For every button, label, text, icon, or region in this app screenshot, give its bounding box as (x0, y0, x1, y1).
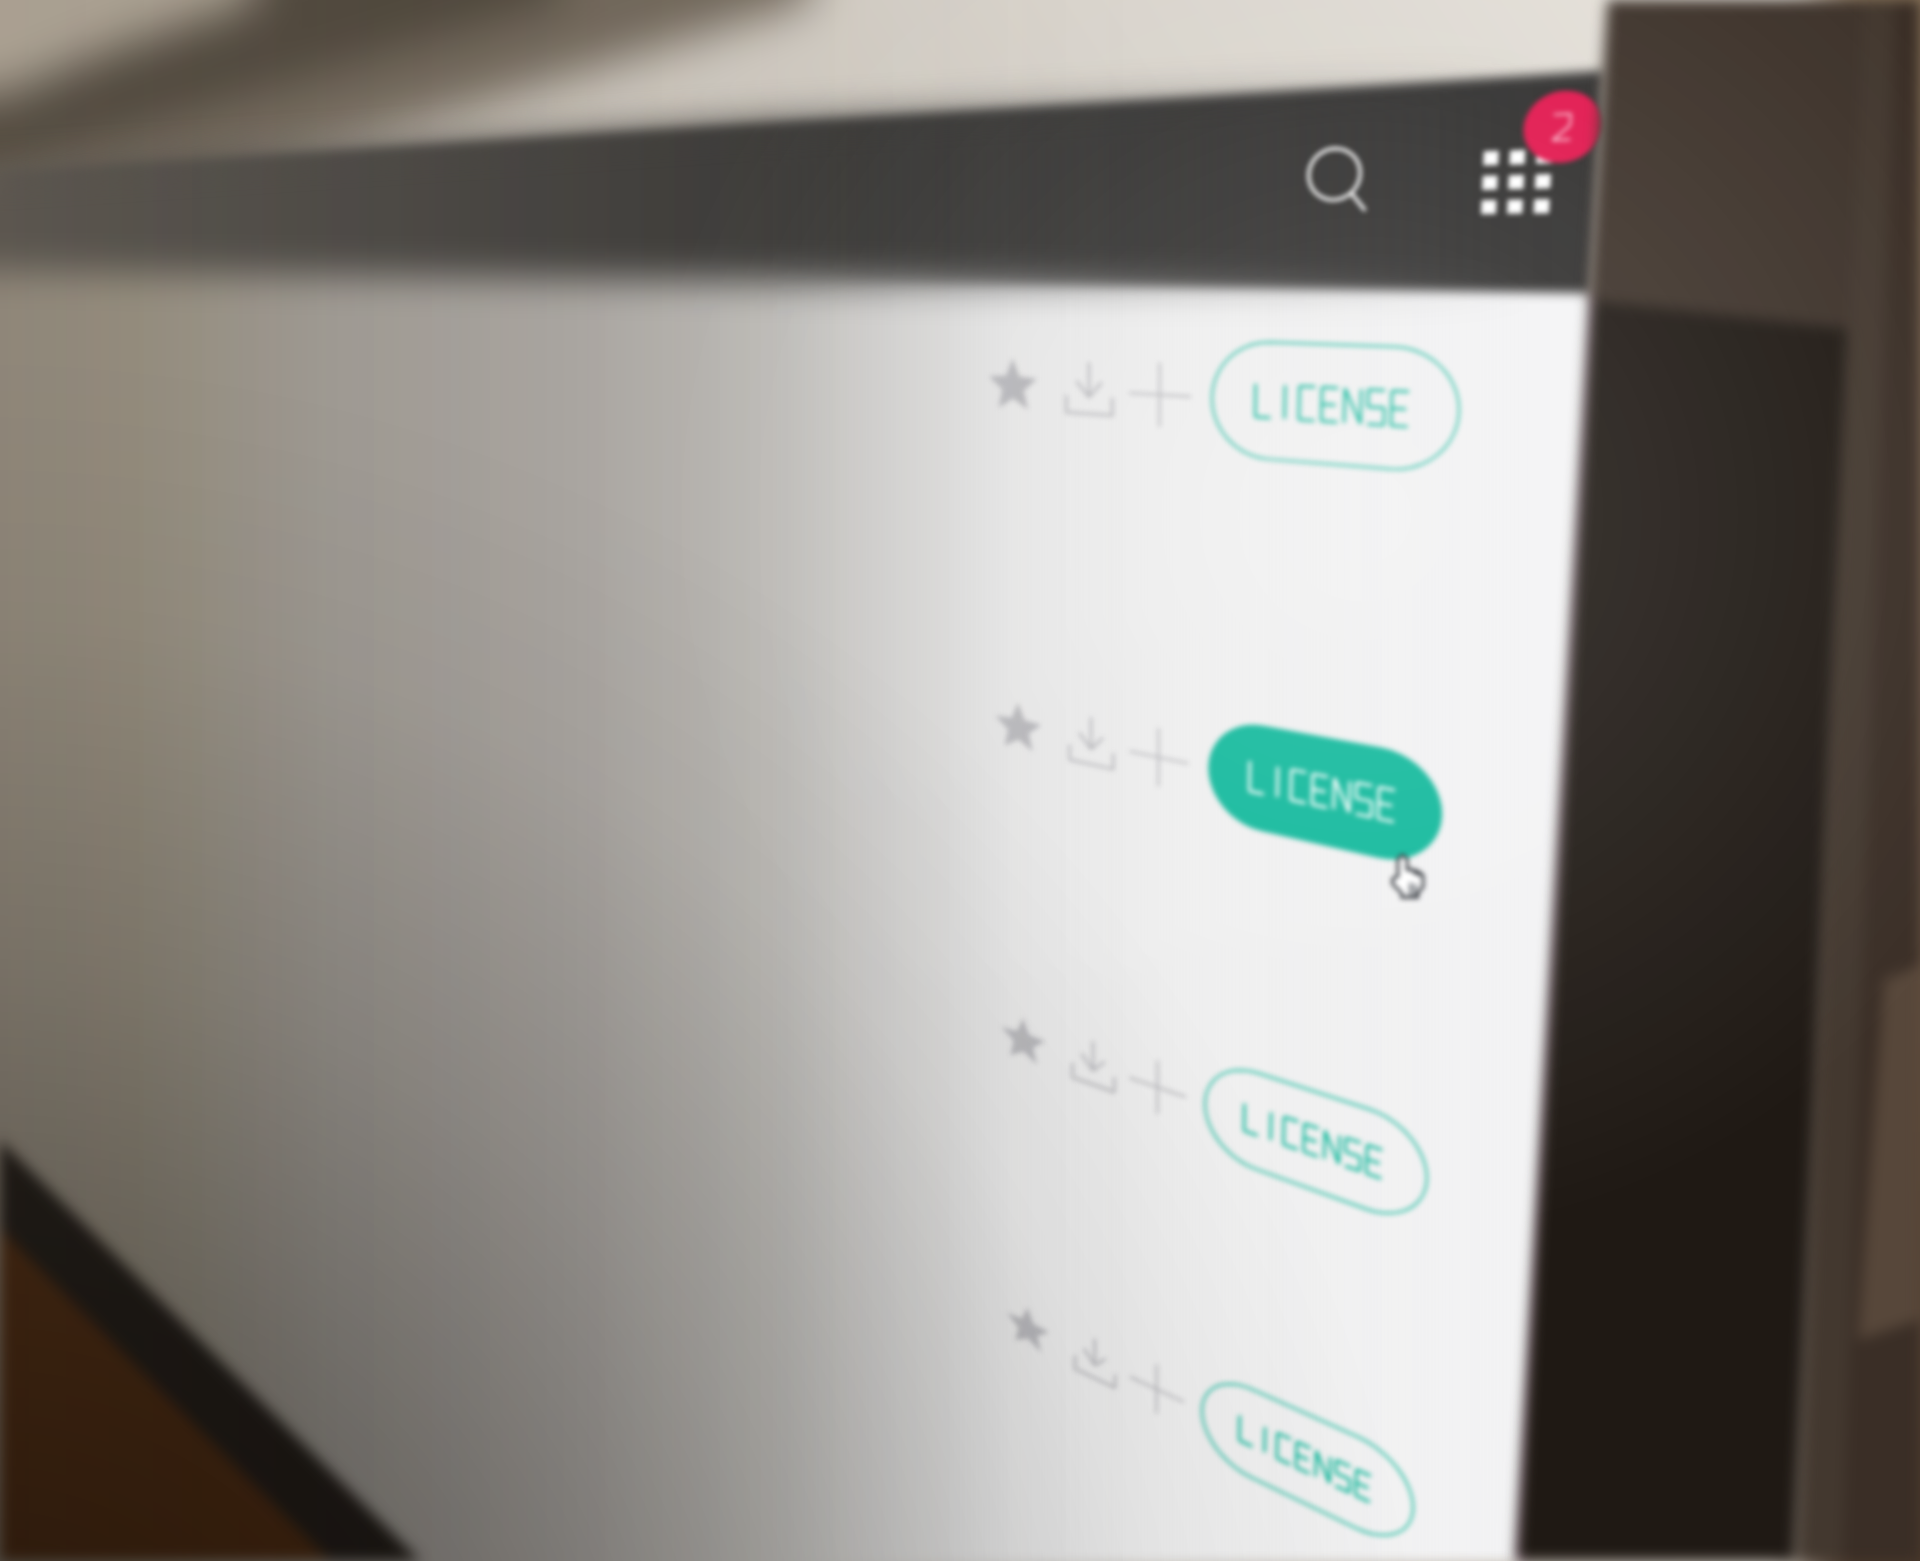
button[interactable]: Favourite (998, 1287, 1066, 1365)
button[interactable]: LICENSE (1212, 340, 1456, 474)
button[interactable]: Add (1123, 714, 1198, 798)
button[interactable]: Favourite (986, 688, 1054, 766)
button[interactable]: LICENSE (1202, 1366, 1411, 1554)
button[interactable]: LICENSE (1205, 1056, 1424, 1230)
button[interactable]: Search (1300, 145, 1375, 220)
button[interactable]: Download (1057, 701, 1129, 783)
button[interactable]: Add (1124, 1344, 1199, 1428)
button[interactable]: Favourite (979, 347, 1047, 425)
button[interactable]: Add (1122, 353, 1197, 437)
button[interactable]: LICENSE (1208, 715, 1439, 871)
button[interactable]: Download (1053, 350, 1125, 432)
button[interactable]: Apps, 2 notifications (1474, 142, 1559, 222)
button[interactable]: Add (1123, 1043, 1198, 1127)
button[interactable]: Favourite (992, 1000, 1060, 1078)
button[interactable]: Download (1063, 1317, 1135, 1399)
button[interactable]: Download (1060, 1022, 1132, 1104)
